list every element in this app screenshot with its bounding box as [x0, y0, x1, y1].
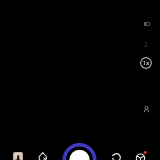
- button[interactable]: Portrait mode: [136, 99, 156, 119]
- button[interactable]: Flash settings: [136, 14, 156, 34]
- button[interactable]: 1x: [140, 57, 152, 69]
- button[interactable]: Camera modes: [131, 147, 151, 160]
- button[interactable]: Gallery: [5, 145, 30, 160]
- button[interactable]: Take photo: [55, 136, 104, 160]
- button[interactable]: Timer: [136, 33, 156, 53]
- button[interactable]: Flash off: [32, 146, 53, 160]
- staticText: 1x: [143, 59, 150, 67]
- button[interactable]: Switch camera: [107, 147, 126, 160]
- staticText: 2: [144, 40, 148, 49]
